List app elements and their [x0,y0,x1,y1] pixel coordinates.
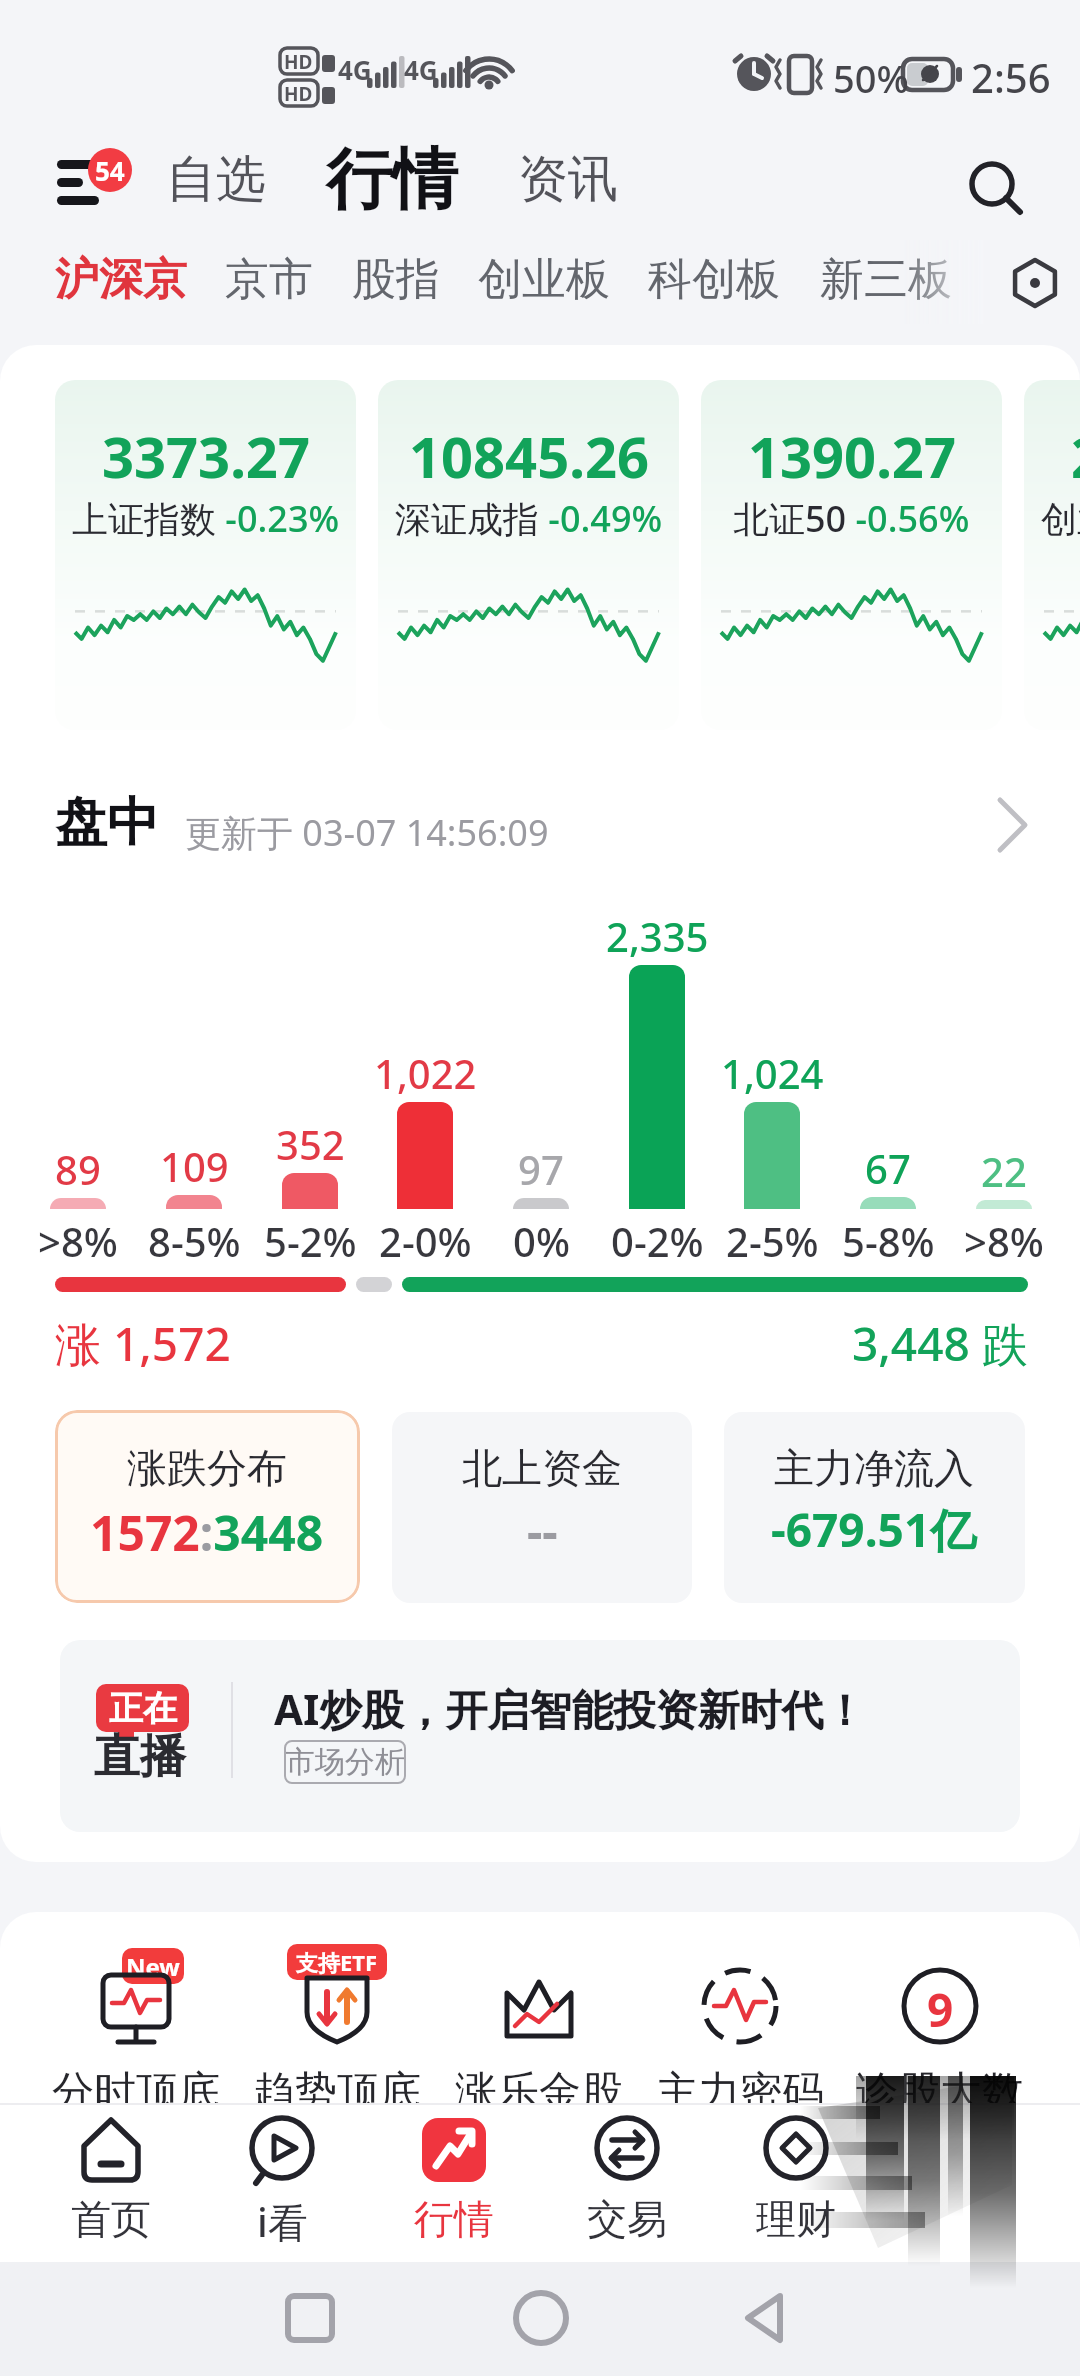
staticText: 3,448 跌 [852,1312,1028,1375]
staticText: 自选 [166,148,266,211]
staticText: 2-0% [379,1214,472,1268]
staticText: 市场分析 [285,1743,405,1781]
staticText: 涨 1,572 [55,1312,231,1375]
staticText: 涨乐金股 [455,2066,623,2119]
staticText: 67 [865,1141,911,1195]
staticText: 352 [276,1117,345,1171]
staticText: 10845.26 [409,418,649,494]
staticText: 3373.27 [102,418,310,494]
staticText: 京市 [225,252,313,307]
staticText: 行情 [326,138,458,221]
staticText: 54 [95,153,125,188]
staticText: 创业板 [478,252,610,307]
staticText: 22 [981,1144,1027,1198]
staticText: 更新于 03-07 14:56:09 [185,808,549,857]
staticText: 支持ETF [296,1947,378,1977]
staticText: 资讯 [518,148,618,211]
staticText: AI炒股，开启智能投资新时代！ [274,1680,866,1737]
staticText: HD [284,81,313,107]
staticText: 主力净流入 [774,1443,974,1493]
staticText: 89 [55,1142,101,1196]
staticText: 1,024 [721,1046,824,1100]
staticText: 5-8% [842,1214,935,1268]
staticText: i看 [257,2194,308,2249]
staticText: 股指 [352,252,440,307]
staticText: 1572:3448 [90,1500,324,1565]
staticText: 主力密码 [656,2066,824,2119]
staticText: 盘中 [55,790,159,856]
staticText: 2,335 [606,909,709,963]
staticText: 1,022 [374,1046,477,1100]
staticText: 涨跌分布 [127,1443,287,1493]
staticText: -- [527,1498,558,1563]
staticText: 新三板 [820,252,952,307]
staticText: 109 [160,1139,229,1193]
staticText: 直播 [94,1728,186,1786]
staticText: -679.51亿 [771,1498,977,1561]
staticText: 分时顶底 [52,2066,220,2119]
staticText: 4G [338,52,372,87]
staticText: 深证成指 -0.49% [395,494,663,543]
staticText: 2:56 [971,50,1051,104]
staticText: 首页 [71,2194,151,2244]
staticText: 上证指数 -0.23% [72,494,340,543]
staticText: 97 [518,1142,564,1196]
staticText: 2-5% [726,1214,819,1268]
staticText: 2150.55 [1071,418,1080,494]
staticText: 诊股大数 [856,2066,1024,2119]
staticText: 9 [927,1978,954,2041]
staticText: 北证50 -0.56% [733,494,970,543]
staticText: 0% [513,1214,570,1268]
staticText: 4G [404,52,438,87]
staticText: 创业板指 -0.87% [1041,494,1080,543]
staticText: 趋势顶底 [253,2066,421,2119]
staticText: New [126,1950,180,1983]
staticText: 理财 [756,2194,836,2244]
staticText: 正在 [109,1687,177,1730]
staticText: 50% [833,52,909,104]
staticText: HD [284,49,313,75]
staticText: 北上资金 [462,1443,622,1493]
staticText: 8-5% [148,1214,241,1268]
staticText: >8% [38,1214,118,1268]
staticText: 行情 [414,2194,494,2244]
staticText: 科创板 [648,252,780,307]
staticText: 交易 [587,2194,667,2244]
staticText: >8% [964,1214,1044,1268]
staticText: 5-2% [264,1214,357,1268]
staticText: 沪深京 [55,252,187,307]
staticText: 1390.27 [748,418,956,494]
staticText: 0-2% [611,1214,704,1268]
